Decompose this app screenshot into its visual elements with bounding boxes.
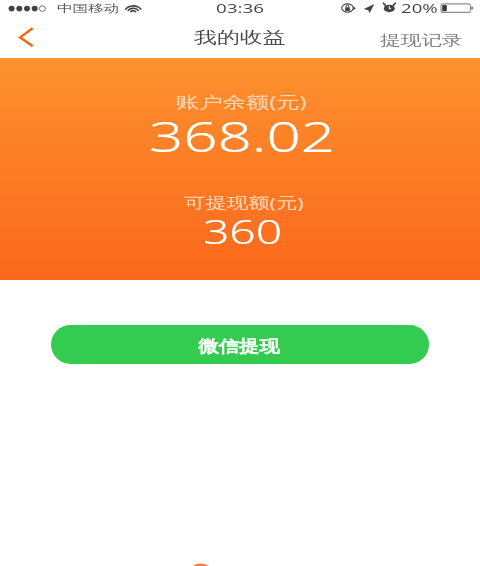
staticText: 可提现额(元) bbox=[184, 192, 304, 212]
staticText: 中国移动 bbox=[57, 1, 119, 15]
staticText: 微信提现 bbox=[198, 336, 280, 355]
button[interactable]: Back bbox=[2, 20, 48, 58]
staticText: 360 bbox=[203, 210, 283, 254]
staticText: 提现记录 bbox=[380, 31, 463, 49]
button[interactable]: 微信提现 bbox=[51, 325, 429, 364]
other: Loading bbox=[189, 558, 215, 566]
staticText: 账户余额(元) bbox=[176, 90, 307, 112]
staticText: 我的收益 bbox=[194, 28, 286, 48]
staticText: 368.02 bbox=[149, 107, 335, 164]
staticText: 20% bbox=[401, 0, 438, 13]
staticText: 03:36 bbox=[216, 0, 265, 13]
button[interactable]: 提现记录 bbox=[368, 20, 476, 58]
